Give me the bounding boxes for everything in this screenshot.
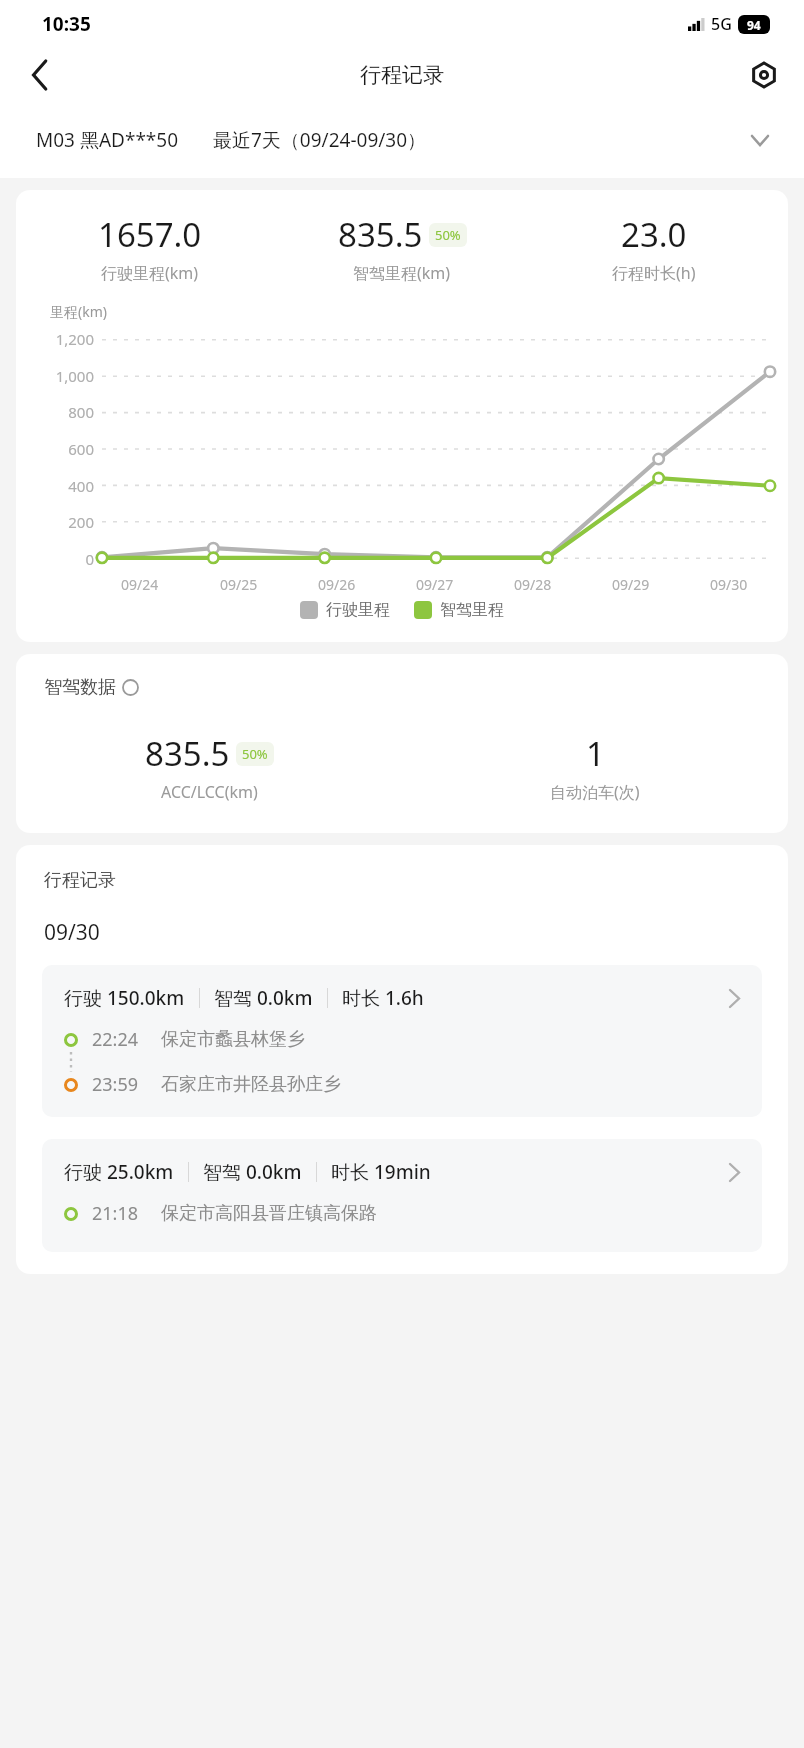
button[interactable]: 行驶 25.0km <box>42 1139 762 1252</box>
staticText: 智驾 0.0km <box>214 985 313 1011</box>
staticText: 行驶里程(km) <box>101 262 199 284</box>
staticText: 5G <box>711 13 732 35</box>
staticText: 600 <box>68 439 94 459</box>
staticText: 行驶 25.0km <box>64 1159 174 1185</box>
staticText: 智驾里程(km) <box>353 262 451 284</box>
staticText: 10:35 <box>42 11 91 37</box>
staticText: 行驶 150.0km <box>64 985 185 1011</box>
staticText: 400 <box>68 476 94 496</box>
staticText: 94 <box>747 17 761 33</box>
staticText: 时长 1.6h <box>342 985 424 1011</box>
staticText: 835.5 <box>338 212 423 257</box>
staticText: 50% <box>242 745 268 763</box>
staticText: 保定市高阳县晋庄镇高保路 <box>161 1202 377 1225</box>
staticText: 23.0 <box>621 212 687 257</box>
staticText: 石家庄市井陉县孙庄乡 <box>161 1073 341 1096</box>
staticText: ACC/LCC(km) <box>161 781 258 803</box>
staticText: 行程记录 <box>44 869 116 892</box>
staticText: 1657.0 <box>98 212 202 257</box>
staticText: 智驾里程 <box>440 600 504 620</box>
staticText: 0 <box>85 549 94 569</box>
staticText: 智驾数据 <box>44 676 116 699</box>
staticText: 智驾 0.0km <box>203 1159 302 1185</box>
staticText: 行驶里程 <box>326 600 390 620</box>
staticText: 09/30 <box>710 575 748 594</box>
button[interactable]: 智驾数据 <box>44 676 139 699</box>
staticText: 行程时长(h) <box>612 262 696 284</box>
staticText: 1 <box>586 731 605 776</box>
staticText: 行程记录 <box>360 62 444 88</box>
staticText: 1,200 <box>55 329 94 349</box>
staticText: 保定市蠡县林堡乡 <box>161 1028 305 1051</box>
button[interactable]: M03 黑AD***50 <box>36 127 179 153</box>
staticText: 835.5 <box>145 731 230 776</box>
button[interactable]: Back <box>16 51 64 99</box>
staticText: 23:59 <box>92 1072 139 1097</box>
staticText: 09/29 <box>612 575 650 594</box>
staticText: 800 <box>68 402 94 422</box>
staticText: 21:18 <box>92 1201 139 1226</box>
staticText: 1,000 <box>55 366 94 386</box>
staticText: 200 <box>68 512 94 532</box>
staticText: 09/30 <box>44 918 100 947</box>
staticText: 09/26 <box>318 575 356 594</box>
staticText: 50% <box>435 226 461 244</box>
staticText: 自动泊车(次) <box>550 781 640 803</box>
button[interactable]: 最近7天（09/24-09/30） <box>213 127 768 153</box>
staticText: 09/27 <box>416 575 454 594</box>
staticText: 09/24 <box>121 575 159 594</box>
staticText: 时长 19min <box>331 1159 431 1185</box>
staticText: 里程(km) <box>50 302 107 321</box>
staticText: 09/25 <box>220 575 258 594</box>
staticText: 22:24 <box>92 1027 139 1052</box>
staticText: 09/28 <box>514 575 552 594</box>
staticText: M03 黑AD***50 <box>36 127 179 153</box>
staticText: 最近7天（09/24-09/30） <box>213 127 427 153</box>
button[interactable]: 行驶 150.0km <box>42 965 762 1117</box>
button[interactable]: Settings <box>742 53 786 97</box>
